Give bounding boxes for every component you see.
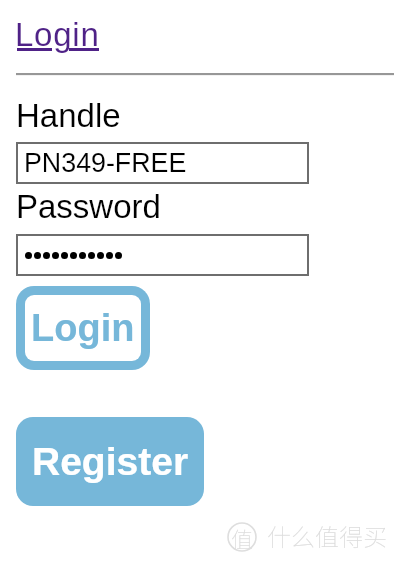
staticText: Password bbox=[16, 188, 161, 225]
button[interactable]: Login bbox=[25, 295, 141, 361]
staticText: 什么值得买 bbox=[267, 518, 387, 553]
staticText: Register bbox=[32, 440, 189, 484]
staticText: 值 bbox=[231, 522, 254, 552]
staticText: Login bbox=[15, 16, 100, 53]
staticText: Login bbox=[31, 307, 135, 349]
staticText: PN349-FREE bbox=[24, 148, 187, 178]
button[interactable]: Register bbox=[16, 417, 204, 506]
staticText: Handle bbox=[16, 97, 121, 134]
button[interactable]: Login bbox=[15, 16, 100, 53]
button[interactable] bbox=[16, 234, 309, 276]
button[interactable]: PN349-FREE bbox=[16, 142, 309, 184]
